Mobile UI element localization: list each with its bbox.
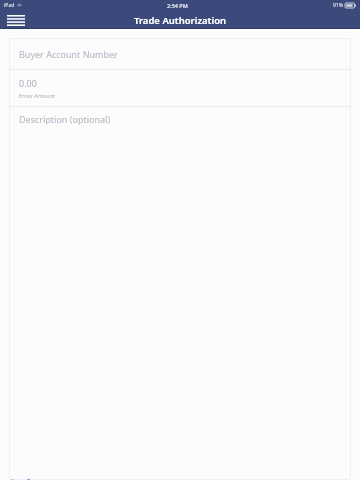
button[interactable]: Buyer Account Number: [9, 38, 351, 69]
staticText: iPad: [4, 2, 15, 9]
staticText: Description (optional): [19, 113, 111, 125]
staticText: 2:54 PM: [167, 2, 188, 9]
staticText: Buyer Account Number: [19, 48, 118, 60]
staticText: 91%: [333, 2, 343, 9]
staticText: Trade Authorization: [134, 14, 227, 27]
staticText: Enter Amount: [19, 92, 56, 99]
button[interactable]: Menu: [4, 11, 28, 29]
button[interactable]: Description (optional): [9, 107, 351, 141]
staticText: 0.00: [19, 77, 37, 89]
button[interactable]: 0.00: [9, 70, 351, 106]
